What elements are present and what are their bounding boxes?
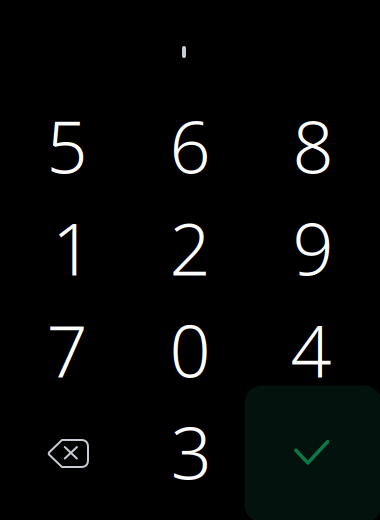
button[interactable]: Delete <box>8 404 128 502</box>
staticText: 4 <box>290 302 331 397</box>
staticText: 6 <box>169 98 210 193</box>
button[interactable]: 1 <box>7 198 127 296</box>
staticText: 2 <box>169 200 210 295</box>
button[interactable]: 9 <box>253 198 373 296</box>
button[interactable]: 7 <box>7 300 127 398</box>
staticText: 5 <box>46 98 87 193</box>
staticText: 7 <box>46 302 87 397</box>
button[interactable]: Confirm <box>244 385 380 520</box>
button[interactable]: 6 <box>130 96 250 194</box>
staticText: 9 <box>292 200 333 295</box>
staticText: 1 <box>52 200 93 295</box>
button[interactable]: 3 <box>130 402 250 500</box>
button[interactable]: 4 <box>253 300 373 398</box>
button[interactable]: 8 <box>253 96 373 194</box>
staticText: 8 <box>292 98 333 193</box>
staticText: 0 <box>169 302 210 397</box>
button[interactable]: 0 <box>130 300 250 398</box>
staticText: 3 <box>171 404 212 499</box>
button[interactable]: 2 <box>130 198 250 296</box>
button[interactable]: 5 <box>7 96 127 194</box>
